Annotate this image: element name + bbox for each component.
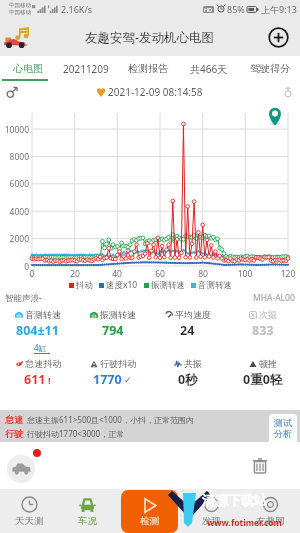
button[interactable]: Location	[267, 107, 283, 127]
staticText: 共振	[184, 358, 202, 369]
staticText: 车况	[78, 515, 97, 527]
button[interactable]: 心电图	[0, 56, 55, 81]
button[interactable]: 共振	[150, 358, 225, 388]
staticText: 0重0轻	[243, 371, 283, 388]
staticText: 行驶抖动1770<3000，正常	[27, 428, 125, 439]
button[interactable]: 测试	[269, 414, 297, 442]
button[interactable]: 驾驶得分	[239, 56, 300, 81]
staticText: 2000	[0, 233, 29, 245]
staticText: 1770	[93, 371, 122, 388]
button[interactable]: 4缸	[34, 342, 50, 354]
staticText: 友趣安驾-发动机心电图	[85, 29, 215, 46]
button[interactable]: 顿挫	[225, 358, 300, 388]
staticText: 85%	[227, 3, 245, 15]
staticText: 中国移动	[9, 2, 31, 9]
staticText: 速度x10	[106, 279, 138, 291]
staticText: 20	[64, 268, 86, 280]
staticText: 行驶抖动	[100, 358, 136, 369]
staticText: 833	[252, 322, 274, 339]
staticText: 检测	[140, 515, 159, 527]
staticText: 音测转速	[198, 280, 232, 291]
staticText: 天天测	[15, 515, 44, 527]
staticText: 智能声浪-	[5, 292, 42, 304]
staticText: 20211209	[63, 62, 109, 76]
staticText: 上午9:13	[261, 3, 297, 15]
staticText: 0	[21, 268, 43, 280]
button[interactable]: Male	[6, 86, 18, 98]
staticText: 804±11	[16, 322, 59, 339]
button[interactable]: 音测转速	[191, 280, 232, 291]
staticText: ✓	[124, 375, 132, 385]
button[interactable]: 速度x10	[99, 279, 138, 291]
staticText: MHA-AL00	[253, 292, 295, 304]
staticText: 10000	[0, 124, 29, 136]
staticText: 行驶	[5, 428, 23, 439]
staticText: 24	[180, 322, 195, 339]
staticText: 2021-12-09 08:14:58	[108, 85, 203, 99]
button[interactable]: 行驶抖动	[75, 358, 150, 388]
staticText: 驾驶得分	[250, 62, 290, 75]
staticText: 检测报告	[128, 62, 168, 75]
staticText: 794	[102, 322, 124, 339]
staticText: 4缸	[34, 342, 47, 353]
button[interactable]: Vehicle	[7, 455, 35, 483]
staticText: 怠速抖动	[25, 358, 61, 369]
button[interactable]: 振测转速	[75, 309, 150, 339]
button[interactable]: 平均速度	[150, 309, 225, 339]
button[interactable]: Female	[282, 86, 294, 98]
staticText: 2.16K/s	[61, 3, 93, 15]
staticText: 0	[0, 261, 29, 273]
staticText: 611	[24, 371, 46, 388]
staticText: 音测转速	[25, 309, 61, 320]
staticText: 发现	[202, 515, 221, 527]
button[interactable]: 怠速抖动	[0, 358, 75, 388]
staticText: 抖动	[76, 280, 93, 291]
button[interactable]: 检测报告	[117, 56, 178, 81]
button[interactable]: Add	[268, 27, 289, 48]
staticText: 4000	[0, 206, 29, 218]
button[interactable]: 发现	[182, 489, 241, 533]
staticText: 8000	[0, 151, 29, 163]
button[interactable]: 友趣网	[241, 489, 300, 533]
button[interactable]: 检测	[121, 490, 178, 533]
staticText: 怠速	[5, 414, 23, 425]
staticText: 6000	[0, 178, 29, 190]
staticText: 0秒	[178, 371, 198, 388]
staticText: 共466天	[190, 62, 228, 76]
button[interactable]: 天天测	[0, 489, 58, 533]
staticText: www.fotimer.com	[207, 517, 282, 529]
staticText: 心电图	[13, 62, 43, 75]
button[interactable]: 抖动	[69, 280, 93, 291]
button[interactable]: 振测转速	[144, 280, 185, 291]
staticText: 顿挫	[259, 358, 277, 369]
staticText: HD	[204, 6, 213, 13]
staticText: 分析	[274, 428, 292, 439]
staticText: 中国移动	[9, 9, 31, 16]
button[interactable]: 20211209	[55, 56, 117, 81]
button[interactable]: 车况	[58, 489, 117, 533]
staticText: 次振	[259, 309, 277, 320]
staticText: 振测转速	[100, 309, 136, 320]
staticText: 40	[106, 268, 128, 280]
staticText: 60	[149, 268, 171, 280]
staticText: 80	[192, 268, 214, 280]
staticText: !	[48, 374, 51, 386]
button[interactable]: 共466天	[178, 56, 239, 81]
staticText: 120	[277, 268, 299, 280]
button[interactable]: 音测转速	[0, 309, 75, 339]
staticText: 怠速主振611>500且<1000，小抖，正常范围内	[27, 414, 194, 425]
staticText: 测试	[274, 417, 292, 428]
staticText: 清源下载站	[202, 492, 267, 508]
staticText: 平均速度	[175, 309, 211, 320]
button[interactable]: 次振	[225, 309, 300, 339]
staticText: 100	[234, 268, 256, 280]
staticText: 振测转速	[151, 280, 185, 291]
staticText: 友趣网	[256, 515, 285, 527]
